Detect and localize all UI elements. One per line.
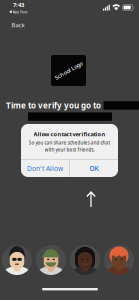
staticText: Allow contact verification [33, 130, 105, 138]
staticText: Time to verify you go to [6, 100, 101, 111]
staticText: Don't Allow [27, 164, 63, 173]
button[interactable]: Don't Allow [21, 160, 69, 177]
staticText: Back [11, 21, 24, 29]
staticText: 7:43 [13, 1, 24, 9]
staticText: with your best friends. [44, 146, 94, 153]
button[interactable]: Friend avatar [36, 245, 66, 275]
staticText: OK [89, 164, 98, 173]
button[interactable]: Back [6, 19, 30, 31]
button[interactable]: OK [70, 160, 118, 177]
staticText: So you can share schedules and chat [28, 139, 110, 146]
staticText: School Logo [53, 67, 84, 74]
button[interactable]: Friend avatar [70, 245, 100, 275]
staticText: App Store [13, 9, 28, 14]
button[interactable]: Friend avatar [104, 245, 134, 275]
button[interactable]: Friend avatar [2, 245, 32, 275]
